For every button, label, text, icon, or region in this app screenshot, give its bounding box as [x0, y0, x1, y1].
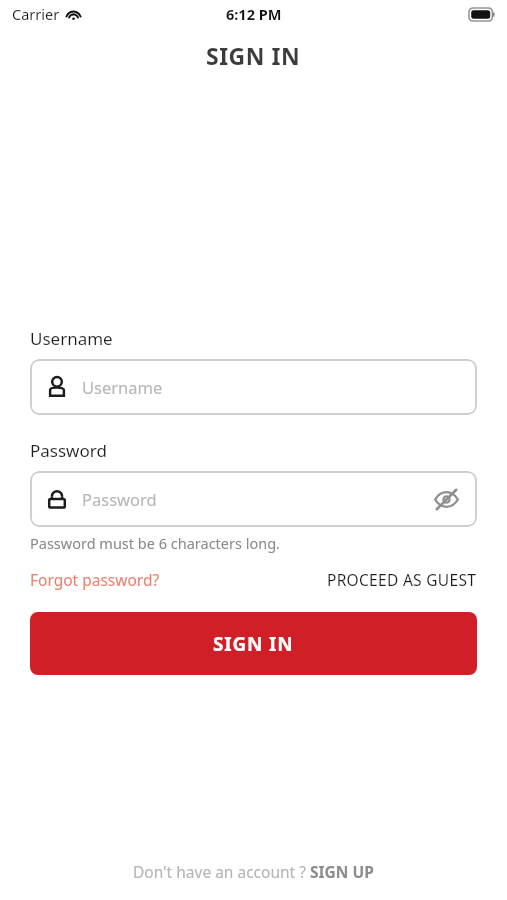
button[interactable]: PROCEED AS GUEST [327, 569, 477, 590]
staticText: Carrier [12, 4, 60, 24]
button[interactable]: Username [30, 359, 477, 415]
staticText: SIGN IN [206, 40, 301, 71]
staticText: SIGN UP [310, 861, 374, 882]
button[interactable]: Show password [429, 482, 463, 516]
staticText: Username [30, 327, 113, 350]
staticText: Username [82, 376, 163, 398]
staticText: SIGN IN [213, 631, 294, 657]
staticText: Forgot password? [30, 569, 160, 590]
button[interactable]: Don't have an account ? [0, 861, 507, 900]
staticText: 6:12 PM [226, 4, 282, 24]
staticText: PROCEED AS GUEST [327, 569, 477, 590]
button[interactable]: SIGN IN [30, 612, 477, 675]
staticText: Don't have an account ? [133, 861, 310, 882]
button[interactable]: Password [30, 471, 477, 527]
staticText: Password must be 6 characters long. [30, 533, 280, 553]
staticText: Password [30, 439, 107, 462]
staticText: Password [82, 488, 157, 510]
button[interactable]: Forgot password? [30, 569, 160, 590]
